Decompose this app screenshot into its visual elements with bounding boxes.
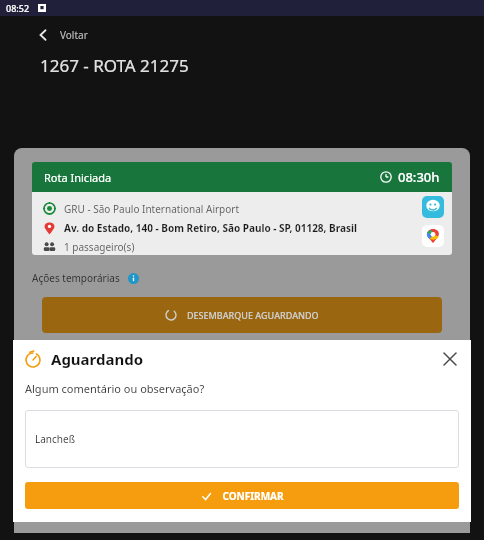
button[interactable]: Voltar	[30, 22, 94, 48]
staticText: Algum comentário ou observação?	[25, 381, 205, 396]
button[interactable]	[42, 342, 442, 378]
button[interactable]: CONFIRMAR	[25, 482, 459, 509]
staticText: Aguardando	[51, 349, 144, 369]
staticText: 08:30h	[398, 168, 440, 186]
button[interactable]: Rota Iniciada	[32, 162, 452, 192]
staticText: 1267 - ROTA 21275	[40, 54, 189, 77]
staticText: Lancheß	[35, 432, 75, 446]
button[interactable]: Lancheß	[25, 410, 459, 468]
button[interactable]	[42, 403, 442, 439]
button[interactable]: Informação	[128, 273, 139, 284]
button[interactable]: DESEMBARQUE AGUARDANDO	[42, 297, 442, 333]
staticText: DESEMBARQUE AGUARDANDO	[187, 309, 319, 321]
other: Voltar	[36, 28, 50, 42]
staticText: Voltar	[60, 28, 88, 42]
button[interactable]: Fechar	[439, 348, 461, 370]
staticText: Ações temporárias	[32, 271, 120, 285]
button[interactable]: Abrir no Waze	[422, 196, 444, 218]
button[interactable]: Abrir no Google Maps	[422, 225, 444, 247]
staticText: CONFIRMAR	[222, 489, 284, 503]
staticText: Rota Iniciada	[44, 170, 112, 185]
staticText: 1 passageiro(s)	[64, 240, 135, 254]
staticText: 08:52	[6, 2, 30, 14]
staticText: Av. do Estado, 140 - Bom Retiro, São Pau…	[64, 221, 357, 235]
staticText: GRU - São Paulo International Airport	[64, 202, 240, 216]
